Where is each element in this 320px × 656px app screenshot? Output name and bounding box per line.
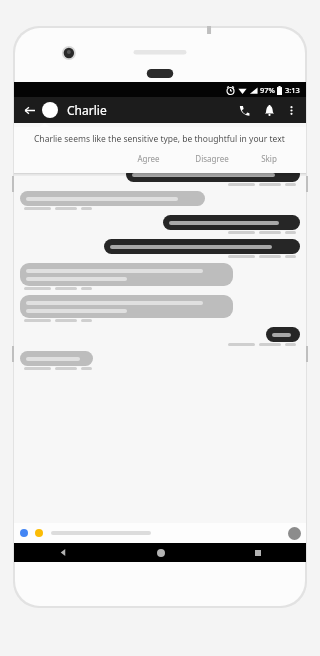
button[interactable] [20,351,93,366]
button[interactable]: Back [20,101,38,119]
button[interactable]: Notifications [259,100,279,120]
button[interactable]: Recent apps [209,543,306,562]
button[interactable]: Call [234,100,254,120]
staticText: Disagree [195,153,229,164]
button[interactable] [20,191,205,206]
button[interactable] [20,295,233,318]
staticText: 97% [260,85,275,95]
button[interactable]: More options [282,101,300,119]
button[interactable] [20,263,233,286]
button[interactable]: Disagree [180,150,243,167]
staticText: Charlie seems like the sensitive type, b… [34,133,285,145]
button[interactable]: Skip [243,150,294,167]
button[interactable]: Send [288,527,301,540]
button[interactable]: Stickers [34,528,44,538]
button[interactable] [266,327,300,342]
button[interactable]: Agree [117,150,180,167]
button[interactable]: Back [14,543,112,562]
button[interactable]: Contact photo [42,102,58,118]
staticText: Charlie [67,102,107,118]
staticText: Agree [137,153,160,164]
button[interactable]: Add attachment [19,528,29,538]
button[interactable] [126,167,300,182]
button[interactable] [163,215,300,230]
staticText: 3:13 [285,85,300,95]
button[interactable]: Home [112,543,209,562]
button[interactable] [104,239,300,254]
button[interactable] [51,531,288,535]
staticText: Skip [261,153,277,164]
